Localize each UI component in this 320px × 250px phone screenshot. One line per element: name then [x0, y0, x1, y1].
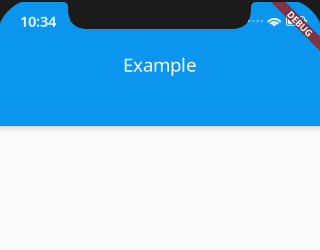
staticText: Example [123, 52, 197, 77]
staticText: DEBUG [284, 18, 316, 30]
staticText: 10:34 [20, 11, 56, 31]
